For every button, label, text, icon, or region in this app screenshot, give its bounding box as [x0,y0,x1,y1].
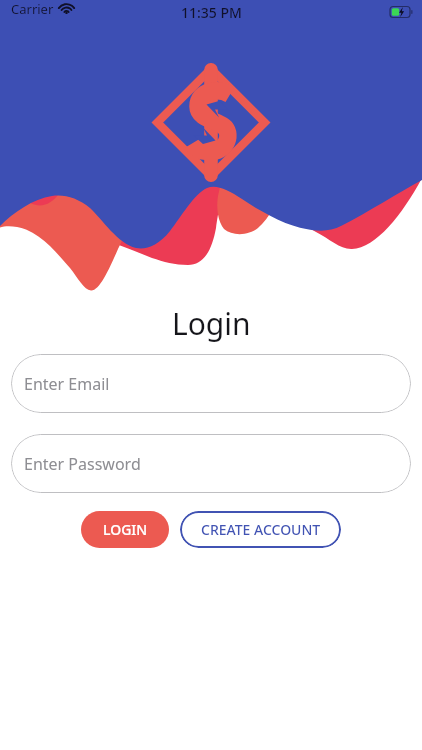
staticText: Login [172,303,251,344]
button[interactable]: LOGIN [81,511,169,548]
staticText: 11:35 PM [181,3,242,22]
button[interactable]: Enter Email [11,354,411,413]
staticText: LOGIN [103,520,148,539]
staticText: Carrier [11,0,54,18]
staticText: CREATE ACCOUNT [201,520,321,539]
button[interactable]: Enter Password [11,434,411,493]
button[interactable]: CREATE ACCOUNT [180,511,341,548]
staticText: Enter Password [24,453,141,475]
staticText: Enter Email [24,373,110,395]
